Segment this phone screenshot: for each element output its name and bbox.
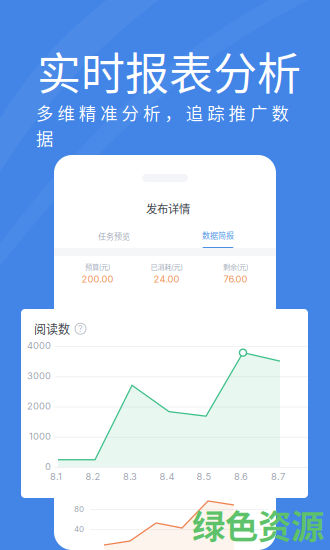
staticText: 8.4 xyxy=(159,471,174,482)
staticText: 发布详情 xyxy=(146,200,190,216)
staticText: 0 xyxy=(45,461,51,472)
staticText: 3000 xyxy=(27,370,51,381)
button[interactable]: 数据简报 xyxy=(170,227,266,253)
staticText: 8.2 xyxy=(85,471,100,482)
staticText: 76.00 xyxy=(223,273,247,285)
staticText: 剩余(元) xyxy=(223,261,248,272)
staticText: 实时报表分析 xyxy=(37,39,301,103)
staticText: 24.00 xyxy=(153,273,179,285)
staticText: 8.6 xyxy=(234,471,248,482)
staticText: ? xyxy=(78,323,83,334)
staticText: 已消耗(元) xyxy=(150,261,182,272)
button[interactable]: 任务预览 xyxy=(66,225,162,247)
staticText: 8.5 xyxy=(196,471,211,482)
staticText: 预算(元) xyxy=(85,261,110,272)
staticText: 8.7 xyxy=(271,471,285,482)
staticText: 2000 xyxy=(27,400,51,412)
staticText: 40 xyxy=(74,524,84,534)
staticText: 80 xyxy=(74,504,84,514)
staticText: 8.3 xyxy=(123,471,137,482)
staticText: 4000 xyxy=(27,340,51,351)
staticText: 8.1 xyxy=(50,471,62,482)
staticText: 绿色资源网 xyxy=(192,500,324,550)
staticText: 多维精准分析，追踪推广数据 xyxy=(36,100,310,125)
staticText: 数据简报 xyxy=(202,229,234,241)
staticText: 200.00 xyxy=(81,273,113,285)
staticText: 阅读数 xyxy=(34,320,70,337)
staticText: 1000 xyxy=(29,431,51,442)
staticText: 任务预览 xyxy=(98,230,130,242)
